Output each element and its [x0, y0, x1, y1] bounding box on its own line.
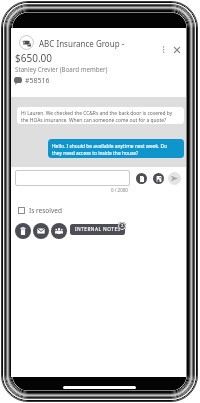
- button[interactable]: Attach image: [153, 173, 164, 184]
- button[interactable]: Attach file: [136, 173, 147, 184]
- staticText: 2: [121, 223, 124, 229]
- button[interactable]: Is resolved: [18, 206, 62, 215]
- button[interactable]: Close: [170, 43, 183, 56]
- button[interactable]: INTERNAL NOTES: [70, 224, 125, 235]
- button[interactable]: Delete: [15, 223, 31, 239]
- button[interactable]: #58516: [14, 76, 50, 86]
- staticText: $650.00: [15, 51, 52, 65]
- staticText: 0 / 2000: [111, 187, 128, 193]
- button[interactable]: Email: [33, 223, 49, 239]
- button[interactable]: Send: [168, 172, 181, 185]
- staticText: Hello. I should be available anytime nex…: [52, 143, 178, 156]
- staticText: INTERNAL NOTES: [75, 226, 121, 233]
- staticText: Hi Lauren. We checked the CC&Rs and the …: [21, 110, 179, 123]
- staticText: #58516: [25, 76, 50, 86]
- staticText: Is resolved: [29, 206, 62, 215]
- button[interactable]: Message: [15, 170, 130, 186]
- staticText: ABC Insurance Group -: [39, 38, 159, 49]
- staticText: Stanley Crevier (Board member): [15, 65, 108, 73]
- button[interactable]: More options: [157, 43, 170, 56]
- button[interactable]: Add people: [51, 223, 67, 239]
